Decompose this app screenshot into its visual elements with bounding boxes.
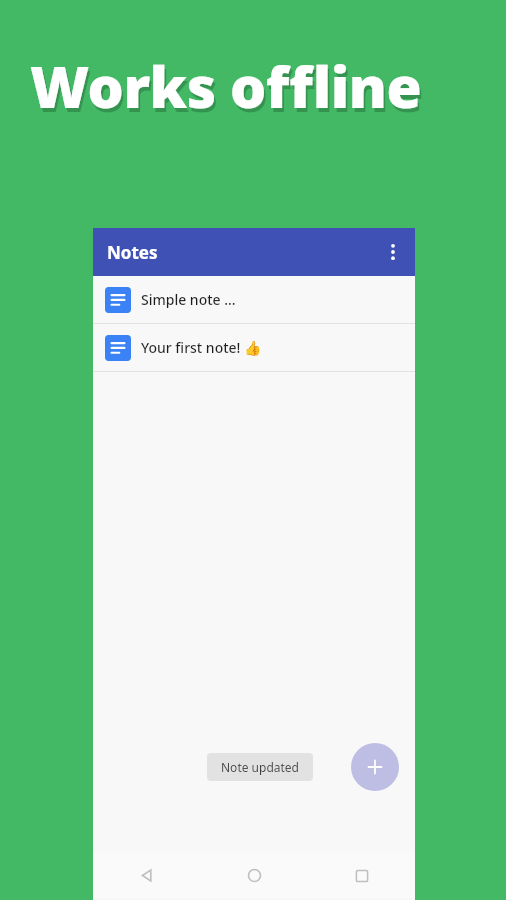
- button[interactable]: Add note: [351, 743, 399, 791]
- staticText: Works offline: [32, 51, 424, 129]
- button[interactable]: Recent apps: [308, 853, 415, 898]
- staticText: Notes: [107, 241, 158, 264]
- button[interactable]: More options: [371, 230, 415, 274]
- staticText: Note updated: [221, 759, 299, 775]
- staticText: Your first note! 👍: [141, 338, 262, 357]
- button[interactable]: Your first note! 👍: [93, 324, 415, 371]
- button[interactable]: Home: [201, 853, 308, 898]
- staticText: Simple note ...: [141, 290, 236, 309]
- button[interactable]: Note updated: [207, 753, 313, 781]
- staticText: Works offline: [30, 47, 422, 125]
- button[interactable]: Simple note ...: [93, 276, 415, 323]
- button[interactable]: Back: [93, 853, 201, 898]
